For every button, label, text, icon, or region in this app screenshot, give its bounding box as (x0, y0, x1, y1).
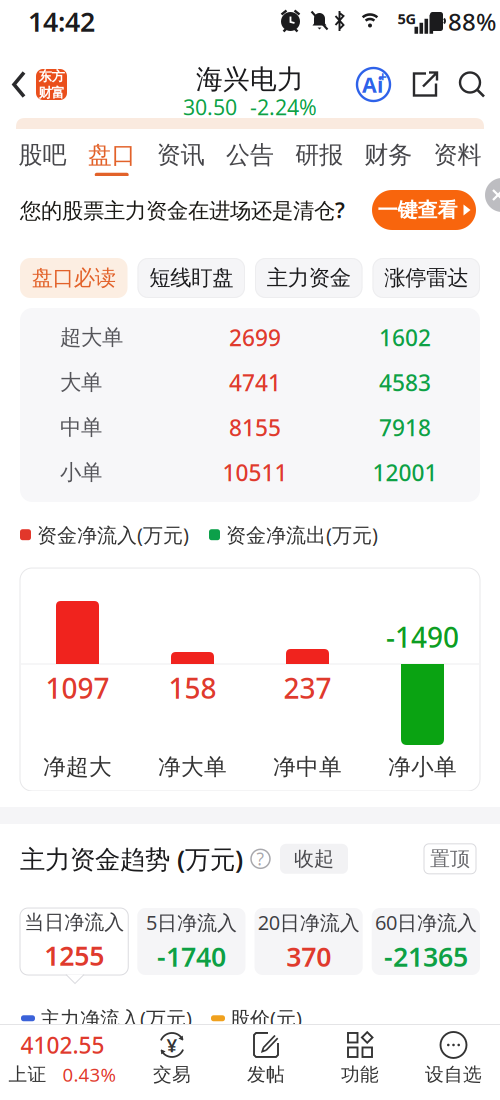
staticText: 0.43% (62, 1062, 116, 1087)
staticText: 4102.55 (20, 1030, 104, 1060)
staticText: 设自选 (425, 1063, 482, 1086)
staticText: 1255 (44, 938, 104, 973)
button[interactable]: 收起 (280, 844, 348, 874)
button[interactable]: 主力资金 (255, 258, 362, 298)
staticText: ¥ (166, 1033, 177, 1057)
staticText: 主力净流入(万元) (40, 1005, 192, 1032)
staticText: 财富 (38, 84, 64, 101)
staticText: 公告 (226, 140, 274, 170)
staticText: 股吧 (19, 140, 67, 170)
button[interactable]: 东方财富 (36, 68, 67, 101)
button[interactable]: 资讯 (146, 140, 215, 177)
staticText: 小单 (60, 459, 102, 486)
staticText: 20日净流入 (258, 909, 360, 936)
staticText: 8155 (229, 412, 281, 442)
staticText: 88% (448, 6, 496, 37)
staticText: 发帖 (247, 1063, 285, 1086)
staticText: 158 (168, 669, 216, 707)
staticText: 收起 (294, 846, 334, 871)
button[interactable]: 涨停雷达 (372, 258, 480, 298)
staticText: -1740 (157, 939, 226, 974)
staticText: 4741 (229, 367, 281, 397)
button[interactable]: 研报 (285, 140, 354, 177)
staticText: 海兴电力 (196, 63, 304, 96)
staticText: Ai (362, 70, 383, 99)
staticText: 资料 (433, 140, 481, 170)
staticText: 370 (286, 939, 331, 974)
staticText: 财务 (364, 140, 412, 170)
staticText: 1097 (45, 669, 109, 707)
staticText: 10511 (222, 457, 287, 487)
staticText: 60日净流入 (375, 909, 477, 936)
staticText: 上证 (8, 1063, 46, 1086)
staticText: 股价(元) (230, 1005, 302, 1032)
button[interactable]: 发帖 (219, 1031, 313, 1086)
staticText: 4583 (379, 367, 431, 397)
staticText: 盘口必读 (32, 265, 116, 291)
button[interactable]: 20日净流入 (254, 908, 363, 975)
staticText: 5日净流入 (146, 909, 237, 936)
button[interactable]: 股吧 (8, 140, 77, 177)
button[interactable]: 功能 (313, 1031, 407, 1086)
button[interactable]: 60日净流入 (372, 908, 480, 975)
staticText: 14:42 (28, 4, 95, 39)
button[interactable]: 资料 (423, 140, 492, 177)
button[interactable]: 置顶 (424, 844, 476, 874)
button[interactable]: AI 助手 (357, 68, 390, 101)
staticText: 资金净流入(万元) (37, 521, 189, 548)
staticText: 超大单 (60, 324, 123, 351)
button[interactable]: Share (390, 69, 440, 99)
staticText: 主力资金趋势 (万元) (20, 842, 243, 876)
button[interactable]: 盘口必读 (20, 258, 127, 298)
button[interactable]: 5日净流入 (137, 908, 245, 975)
staticText: 研报 (295, 140, 343, 170)
staticText: 1602 (379, 322, 431, 352)
button[interactable]: 当日净流入 (20, 908, 128, 975)
staticText: 2699 (229, 322, 281, 352)
staticText: 主力资金 (267, 265, 351, 291)
staticText: + (378, 67, 386, 86)
button[interactable]: 公告 (215, 140, 284, 177)
staticText: 7918 (379, 412, 431, 442)
staticText: ? (256, 847, 264, 870)
button[interactable]: 4102.55 (0, 1030, 125, 1087)
staticText: -2.24% (250, 93, 317, 121)
staticText: -21365 (384, 939, 468, 974)
staticText: 5G (397, 9, 416, 28)
staticText: 资讯 (157, 140, 205, 170)
staticText: 237 (283, 669, 331, 707)
staticText: 12001 (372, 457, 437, 487)
staticText: 资金净流出(万元) (226, 521, 378, 548)
staticText: 30.50 (183, 93, 237, 121)
staticText: 净超大 (43, 753, 112, 781)
button[interactable]: Search (440, 70, 500, 98)
staticText: 短线盯盘 (149, 265, 233, 291)
staticText: 您的股票主力资金在进场还是清仓? (20, 196, 345, 224)
button[interactable]: Back (0, 71, 36, 97)
button[interactable]: 设自选 (407, 1031, 500, 1086)
button[interactable]: 一键查看 (372, 190, 476, 230)
button[interactable]: 短线盯盘 (137, 258, 245, 298)
staticText: 置顶 (430, 846, 470, 871)
staticText: 功能 (341, 1063, 379, 1086)
button[interactable]: 财务 (354, 140, 423, 177)
staticText: 涨停雷达 (384, 265, 468, 291)
button[interactable]: 盘口 (77, 140, 146, 177)
staticText: 中单 (60, 414, 102, 441)
staticText: -1490 (386, 618, 459, 656)
staticText: 盘口 (88, 140, 136, 170)
button[interactable]: Close (466, 176, 500, 210)
staticText: 当日净流入 (24, 910, 124, 935)
staticText: 一键查看 (377, 198, 457, 222)
button[interactable]: 帮助 (243, 847, 270, 870)
staticText: 东方 (38, 68, 64, 84)
staticText: 大单 (60, 369, 102, 396)
staticText: 净小单 (388, 753, 457, 781)
staticText: 交易 (153, 1063, 191, 1086)
staticText: 净中单 (273, 753, 342, 781)
button[interactable]: ¥ (125, 1031, 219, 1086)
staticText: 净大单 (158, 753, 227, 781)
